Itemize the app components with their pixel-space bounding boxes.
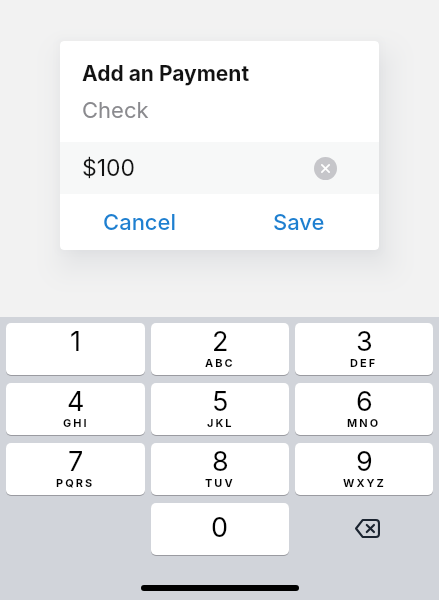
staticText: DEF	[350, 356, 378, 369]
staticText: JKL	[207, 416, 234, 429]
staticText: Check	[82, 97, 149, 124]
staticText: 1	[70, 325, 81, 358]
staticText: PQRS	[56, 476, 95, 489]
staticText: 6	[356, 385, 373, 418]
button[interactable]: 0	[151, 503, 289, 555]
button[interactable]: Delete	[295, 503, 433, 555]
button[interactable]: Save	[219, 194, 379, 250]
button[interactable]: 4	[6, 383, 145, 435]
staticText: GHI	[63, 416, 89, 429]
staticText: 7	[68, 445, 84, 478]
button[interactable]: 3	[295, 323, 433, 375]
staticText: $100	[82, 154, 136, 182]
staticText: 8	[212, 445, 229, 478]
button[interactable]: 8	[151, 443, 289, 495]
button[interactable]: 6	[295, 383, 433, 435]
staticText: TUV	[205, 476, 235, 489]
button[interactable]: 7	[6, 443, 145, 495]
button[interactable]: Clear text	[314, 157, 337, 180]
staticText: ABC	[205, 356, 235, 369]
staticText: 9	[356, 445, 373, 478]
staticText: Add an Payment	[82, 61, 250, 86]
staticText: 2	[212, 325, 229, 358]
staticText: Cancel	[103, 209, 177, 236]
button[interactable]: 9	[295, 443, 433, 495]
staticText: MNO	[347, 416, 381, 429]
staticText: 0	[211, 511, 229, 544]
button[interactable]: Cancel	[60, 194, 219, 250]
staticText: WXYZ	[343, 476, 386, 489]
button[interactable]: 5	[151, 383, 289, 435]
button[interactable]: 2	[151, 323, 289, 375]
staticText: 5	[212, 385, 229, 418]
staticText: 3	[356, 325, 373, 358]
staticText: Save	[273, 209, 325, 236]
staticText: 4	[67, 385, 85, 418]
button[interactable]: $100	[60, 142, 379, 194]
button[interactable]: 1	[6, 323, 145, 375]
